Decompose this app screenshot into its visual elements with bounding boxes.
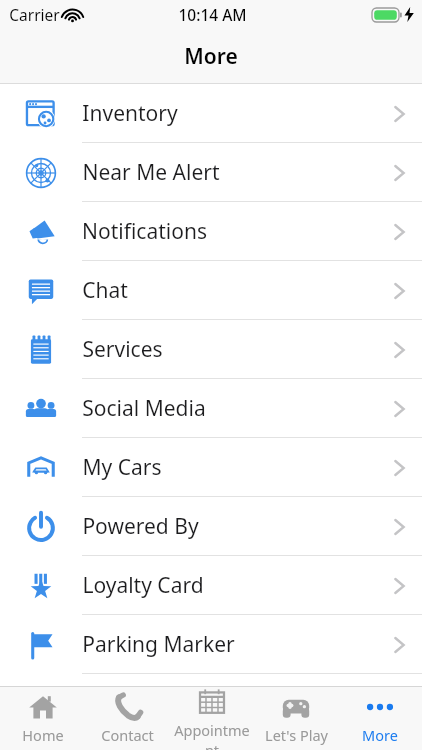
staticText: My Cars [82,453,162,482]
staticText: Near Me Alert [82,158,220,187]
button[interactable]: Chat [0,261,422,320]
staticText: More [362,725,398,745]
staticText: 10:14 AM [178,4,247,25]
staticText: Appointment [170,720,254,750]
staticText: Home [22,725,64,745]
staticText: Social Media [82,394,206,423]
button[interactable]: More [338,687,422,750]
button[interactable]: Social Media [0,379,422,438]
button[interactable]: Near Me Alert [0,143,422,202]
staticText: Powered By [82,512,199,541]
button[interactable]: Services [0,320,422,379]
button[interactable]: Appointment [170,687,254,750]
staticText: Loyalty Card [82,571,204,600]
staticText: Contact [101,725,154,745]
button[interactable]: Parking Marker [0,615,422,674]
staticText: More [184,42,238,71]
staticText: Chat [82,276,128,305]
button[interactable]: My Cars [0,438,422,497]
button[interactable]: Let's Play [254,687,338,750]
staticText: Services [82,335,163,364]
button[interactable]: Inventory [0,84,422,143]
button[interactable]: Notifications [0,202,422,261]
staticText: Inventory [82,99,178,128]
staticText: Let's Play [265,725,328,745]
button[interactable]: Loyalty Card [0,556,422,615]
button[interactable]: Contact [85,687,170,750]
staticText: Parking Marker [82,630,235,659]
button[interactable]: Home [0,687,85,750]
staticText: Carrier [9,4,60,25]
button[interactable]: Powered By [0,497,422,556]
staticText: Notifications [82,217,207,246]
